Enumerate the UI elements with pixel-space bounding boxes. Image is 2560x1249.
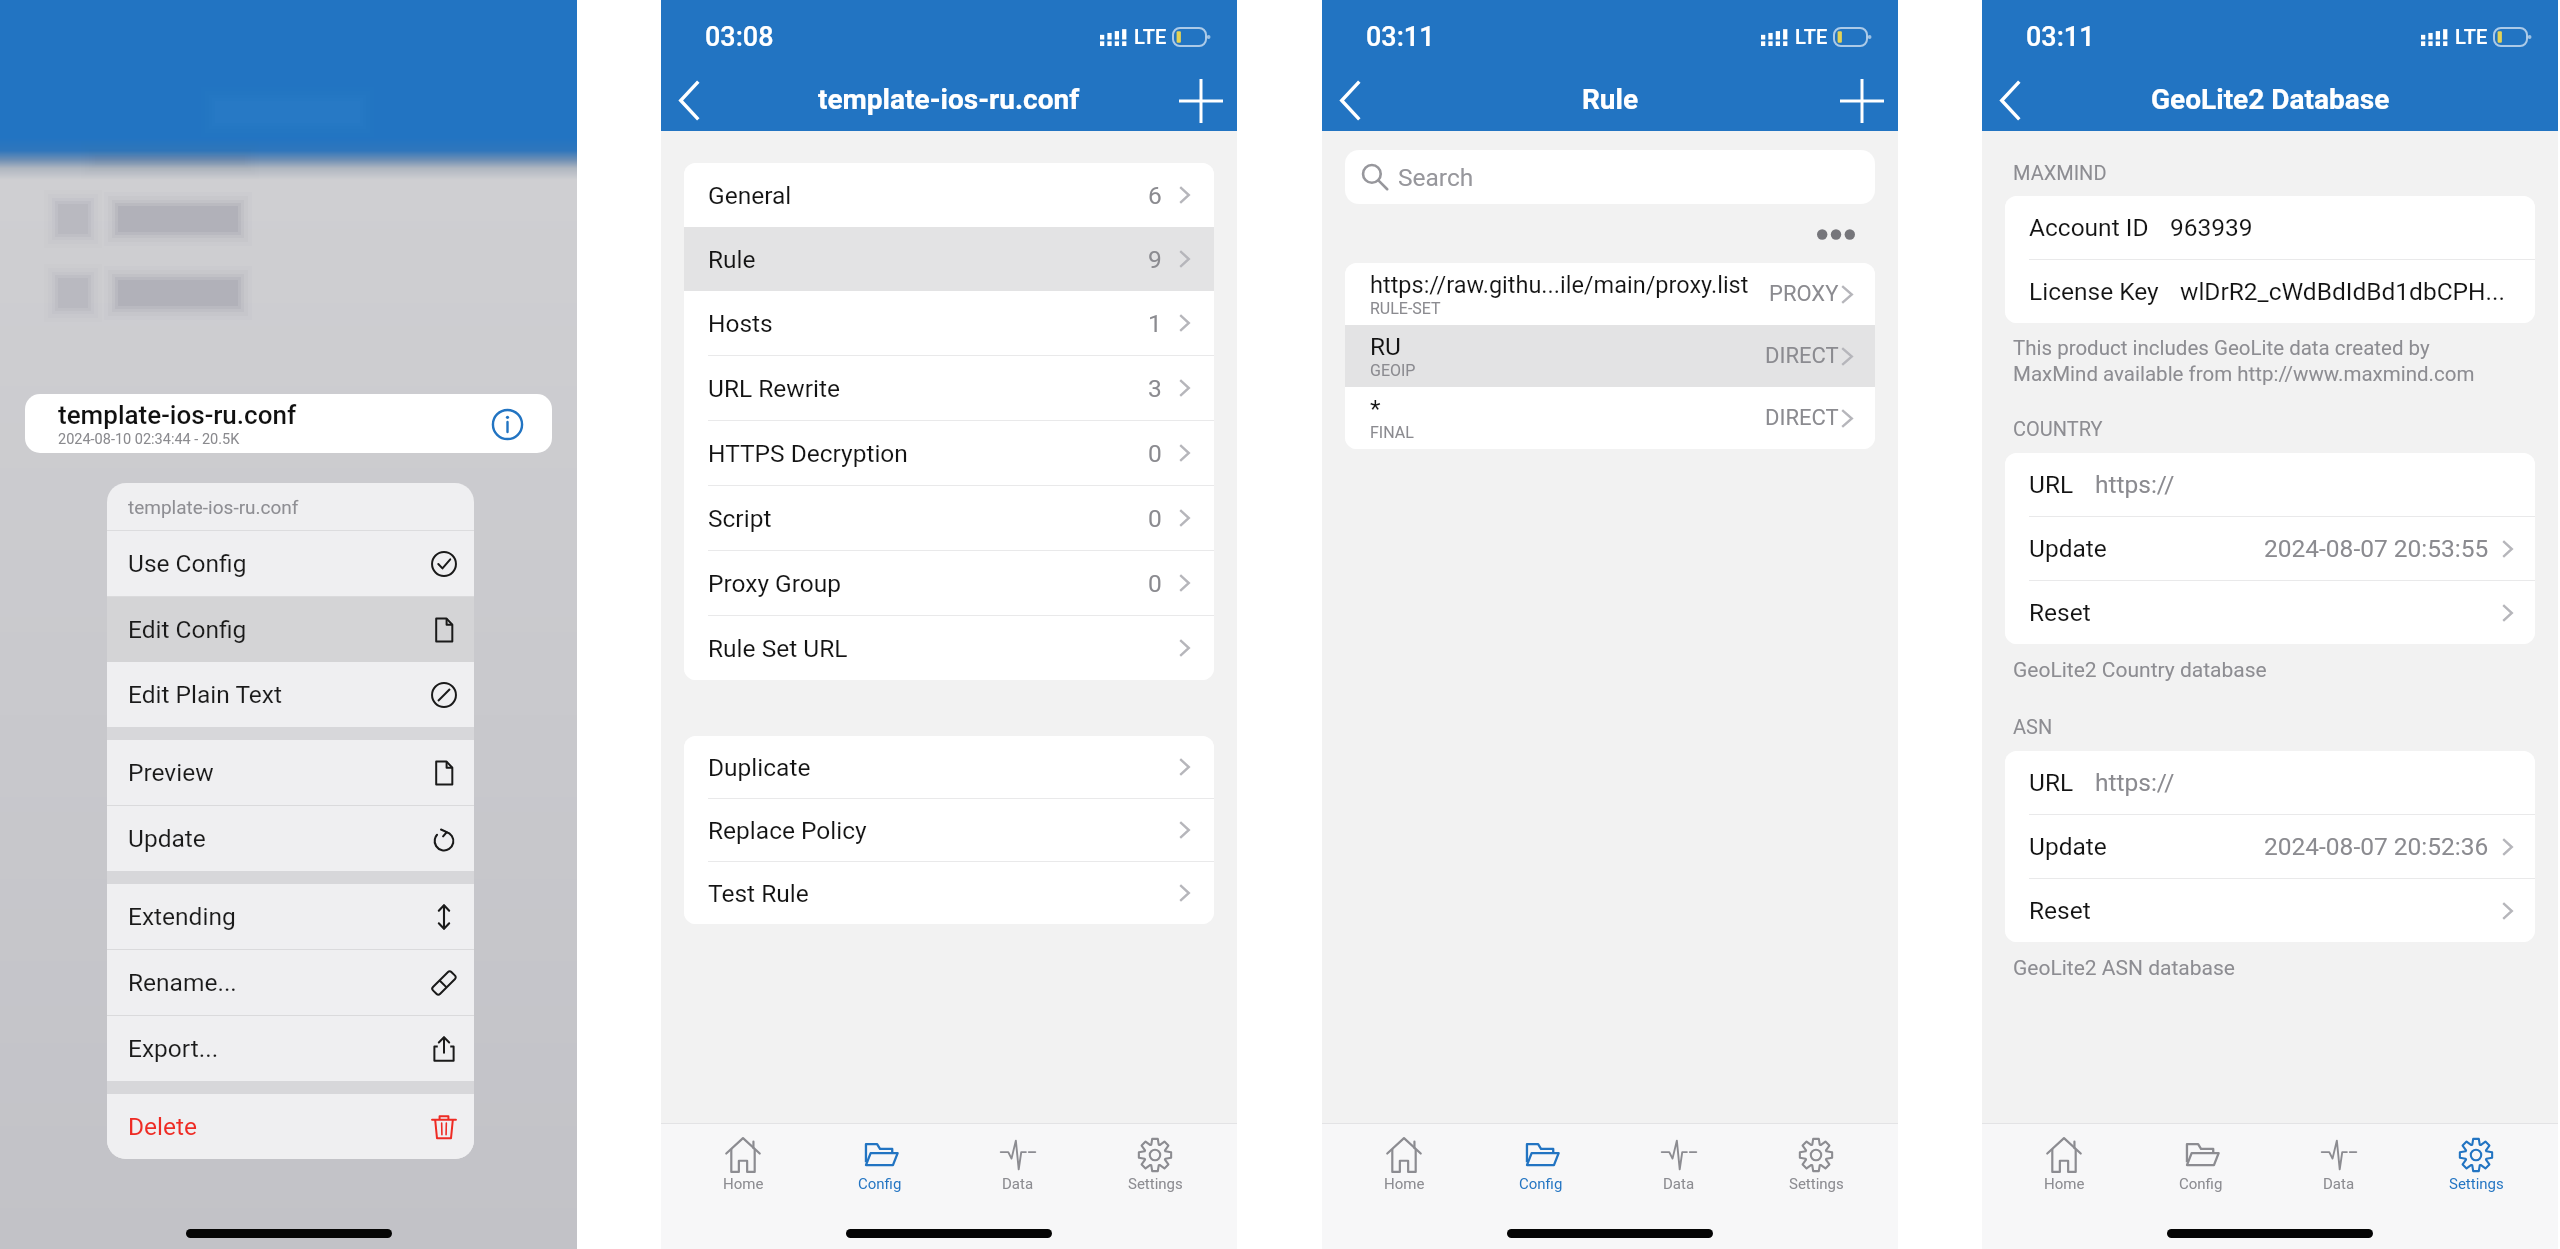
staticText: LTE bbox=[2455, 25, 2488, 48]
button[interactable]: Use Config bbox=[107, 531, 474, 597]
staticText: Rename... bbox=[128, 968, 431, 997]
button[interactable]: Config bbox=[1486, 1124, 1596, 1211]
button[interactable]: Proxy Group bbox=[684, 551, 1214, 616]
button[interactable]: Replace Policy bbox=[684, 799, 1214, 862]
staticText: This product includes GeoLite data creat… bbox=[2013, 336, 2516, 386]
staticText: PROXY bbox=[1769, 281, 1839, 307]
button[interactable]: Home bbox=[1349, 1124, 1459, 1211]
staticText: template-ios-ru.conf bbox=[128, 496, 299, 518]
button[interactable]: Settings bbox=[1761, 1124, 1871, 1211]
staticText: 2024-08-10 02:34:44 - 20.5K bbox=[58, 431, 240, 448]
button[interactable]: Settings bbox=[1100, 1124, 1210, 1211]
staticText: 9 bbox=[1148, 245, 1162, 274]
button[interactable]: URL Rewrite bbox=[684, 356, 1214, 421]
staticText: Settings bbox=[1789, 1175, 1844, 1193]
button[interactable]: Export... bbox=[107, 1016, 474, 1081]
staticText: 6 bbox=[1148, 181, 1162, 210]
button[interactable]: Account ID bbox=[2005, 196, 2535, 260]
button[interactable]: Rule Set URL bbox=[684, 616, 1214, 680]
staticText: 0 bbox=[1148, 569, 1162, 598]
button[interactable]: Hosts bbox=[684, 291, 1214, 356]
staticText: Config bbox=[1519, 1175, 1563, 1193]
button[interactable]: Data bbox=[963, 1124, 1073, 1211]
button[interactable]: Update bbox=[107, 806, 474, 871]
button[interactable]: General bbox=[684, 163, 1214, 227]
button[interactable]: More options bbox=[1810, 217, 1862, 251]
button[interactable]: Script bbox=[684, 486, 1214, 551]
button[interactable]: https://raw.githu...ile/main/proxy.list bbox=[1345, 263, 1875, 325]
button[interactable]: Reset bbox=[2005, 581, 2535, 644]
staticText: Use Config bbox=[128, 549, 431, 578]
button[interactable]: Settings bbox=[2421, 1124, 2531, 1211]
staticText: DIRECT bbox=[1765, 405, 1839, 431]
button[interactable]: Test Rule bbox=[684, 862, 1214, 924]
staticText: Edit Config bbox=[128, 615, 431, 644]
button[interactable]: Rename... bbox=[107, 950, 474, 1016]
staticText: Reset bbox=[2029, 896, 2091, 925]
button[interactable]: Edit Config bbox=[107, 597, 474, 662]
button[interactable]: Back bbox=[661, 70, 723, 131]
staticText: FINAL bbox=[1370, 423, 1414, 442]
staticText: Rule Set URL bbox=[708, 634, 1179, 663]
staticText: 2024-08-07 20:52:36 bbox=[2264, 832, 2489, 861]
staticText: Replace Policy bbox=[708, 816, 1179, 845]
button[interactable]: Delete bbox=[107, 1094, 474, 1159]
button[interactable]: Reset bbox=[2005, 879, 2535, 942]
button[interactable]: License Key bbox=[2005, 260, 2535, 323]
staticText: https://raw.githu...ile/main/proxy.list bbox=[1370, 271, 1749, 299]
button[interactable]: Update bbox=[2005, 815, 2535, 879]
staticText: LTE bbox=[1795, 25, 1828, 48]
staticText: GeoLite2 ASN database bbox=[2013, 956, 2235, 981]
button[interactable]: Preview bbox=[107, 740, 474, 806]
staticText: Settings bbox=[2449, 1175, 2504, 1193]
button[interactable]: Add bbox=[1826, 70, 1898, 131]
staticText: Rule bbox=[1582, 83, 1639, 116]
button[interactable]: Back bbox=[1982, 70, 2044, 131]
staticText: MAXMIND bbox=[2013, 161, 2107, 184]
staticText: Reset bbox=[2029, 598, 2091, 627]
button[interactable]: URL bbox=[2005, 453, 2535, 517]
button[interactable]: Config bbox=[825, 1124, 935, 1211]
button[interactable]: Data bbox=[1624, 1124, 1734, 1211]
button[interactable]: RU bbox=[1345, 325, 1875, 387]
staticText: template-ios-ru.conf bbox=[818, 83, 1080, 116]
staticText: 963939 bbox=[2170, 213, 2513, 242]
button[interactable]: Extending bbox=[107, 884, 474, 950]
staticText: Edit Plain Text bbox=[128, 680, 431, 709]
staticText: * bbox=[1370, 394, 1381, 423]
button[interactable]: Add bbox=[1165, 70, 1237, 131]
button[interactable]: * bbox=[1345, 387, 1875, 449]
staticText: Home bbox=[2044, 1175, 2085, 1193]
staticText: Home bbox=[723, 1175, 764, 1193]
staticText: 1 bbox=[1148, 309, 1162, 338]
button[interactable]: template-ios-ru.conf bbox=[25, 394, 552, 453]
button[interactable]: Home bbox=[2009, 1124, 2119, 1211]
staticText: 0 bbox=[1148, 504, 1162, 533]
staticText: 03:11 bbox=[1366, 21, 1435, 53]
button[interactable]: Data bbox=[2284, 1124, 2394, 1211]
staticText: Data bbox=[1663, 1175, 1695, 1193]
staticText: 0 bbox=[1148, 439, 1162, 468]
staticText: Search bbox=[1398, 163, 1474, 192]
staticText: Delete bbox=[128, 1112, 431, 1141]
staticText: URL Rewrite bbox=[708, 374, 1148, 403]
staticText: URL bbox=[2029, 470, 2074, 499]
button[interactable]: Update bbox=[2005, 517, 2535, 581]
button[interactable]: Rule bbox=[684, 227, 1214, 291]
staticText: Preview bbox=[128, 758, 431, 787]
button[interactable]: Duplicate bbox=[684, 736, 1214, 799]
staticText: Data bbox=[1002, 1175, 1034, 1193]
staticText: 3 bbox=[1148, 374, 1162, 403]
staticText: Update bbox=[2029, 832, 2107, 861]
staticText: https:// bbox=[2095, 768, 2513, 797]
button[interactable]: URL bbox=[2005, 751, 2535, 815]
staticText: Update bbox=[2029, 534, 2107, 563]
button[interactable]: Edit Plain Text bbox=[107, 662, 474, 727]
button[interactable]: Search bbox=[1345, 150, 1875, 204]
staticText: 03:08 bbox=[705, 21, 774, 53]
button[interactable]: Info bbox=[487, 404, 527, 444]
button[interactable]: Home bbox=[688, 1124, 798, 1211]
button[interactable]: Back bbox=[1322, 70, 1384, 131]
button[interactable]: HTTPS Decryption bbox=[684, 421, 1214, 486]
button[interactable]: Config bbox=[2146, 1124, 2256, 1211]
